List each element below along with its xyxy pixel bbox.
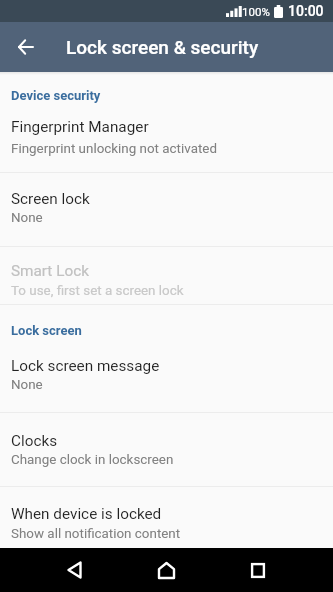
button[interactable] <box>144 548 188 592</box>
staticText: Change clock in lockscreen <box>11 452 174 468</box>
staticText: Lock screen <box>11 323 82 338</box>
button[interactable]: Screen lock <box>0 173 333 246</box>
button[interactable]: Smart Lock <box>0 247 333 304</box>
staticText: Smart Lock <box>11 262 89 280</box>
button[interactable] <box>236 548 280 592</box>
staticText: None <box>11 377 43 393</box>
staticText: Lock screen message <box>11 357 160 375</box>
staticText: Show all notification content <box>11 526 181 542</box>
button[interactable]: When device is locked <box>0 487 333 548</box>
staticText: Device security <box>11 88 101 103</box>
staticText: When device is locked <box>11 505 162 523</box>
staticText: Screen lock <box>11 190 90 208</box>
staticText: Clocks <box>11 432 58 450</box>
button[interactable]: Fingerprint Manager <box>0 110 333 172</box>
button[interactable]: Lock screen message <box>0 341 333 412</box>
staticText: 10:00 <box>288 3 324 19</box>
button[interactable] <box>0 22 52 72</box>
staticText: 100% <box>242 5 270 18</box>
staticText: Lock screen & security <box>66 36 259 58</box>
staticText: None <box>11 210 43 226</box>
staticText: Fingerprint Manager <box>11 118 149 136</box>
button[interactable] <box>52 548 96 592</box>
staticText: To use, first set a screen lock <box>11 283 184 299</box>
staticText: Fingerprint unlocking not activated <box>11 141 217 157</box>
button[interactable]: Clocks <box>0 413 333 486</box>
